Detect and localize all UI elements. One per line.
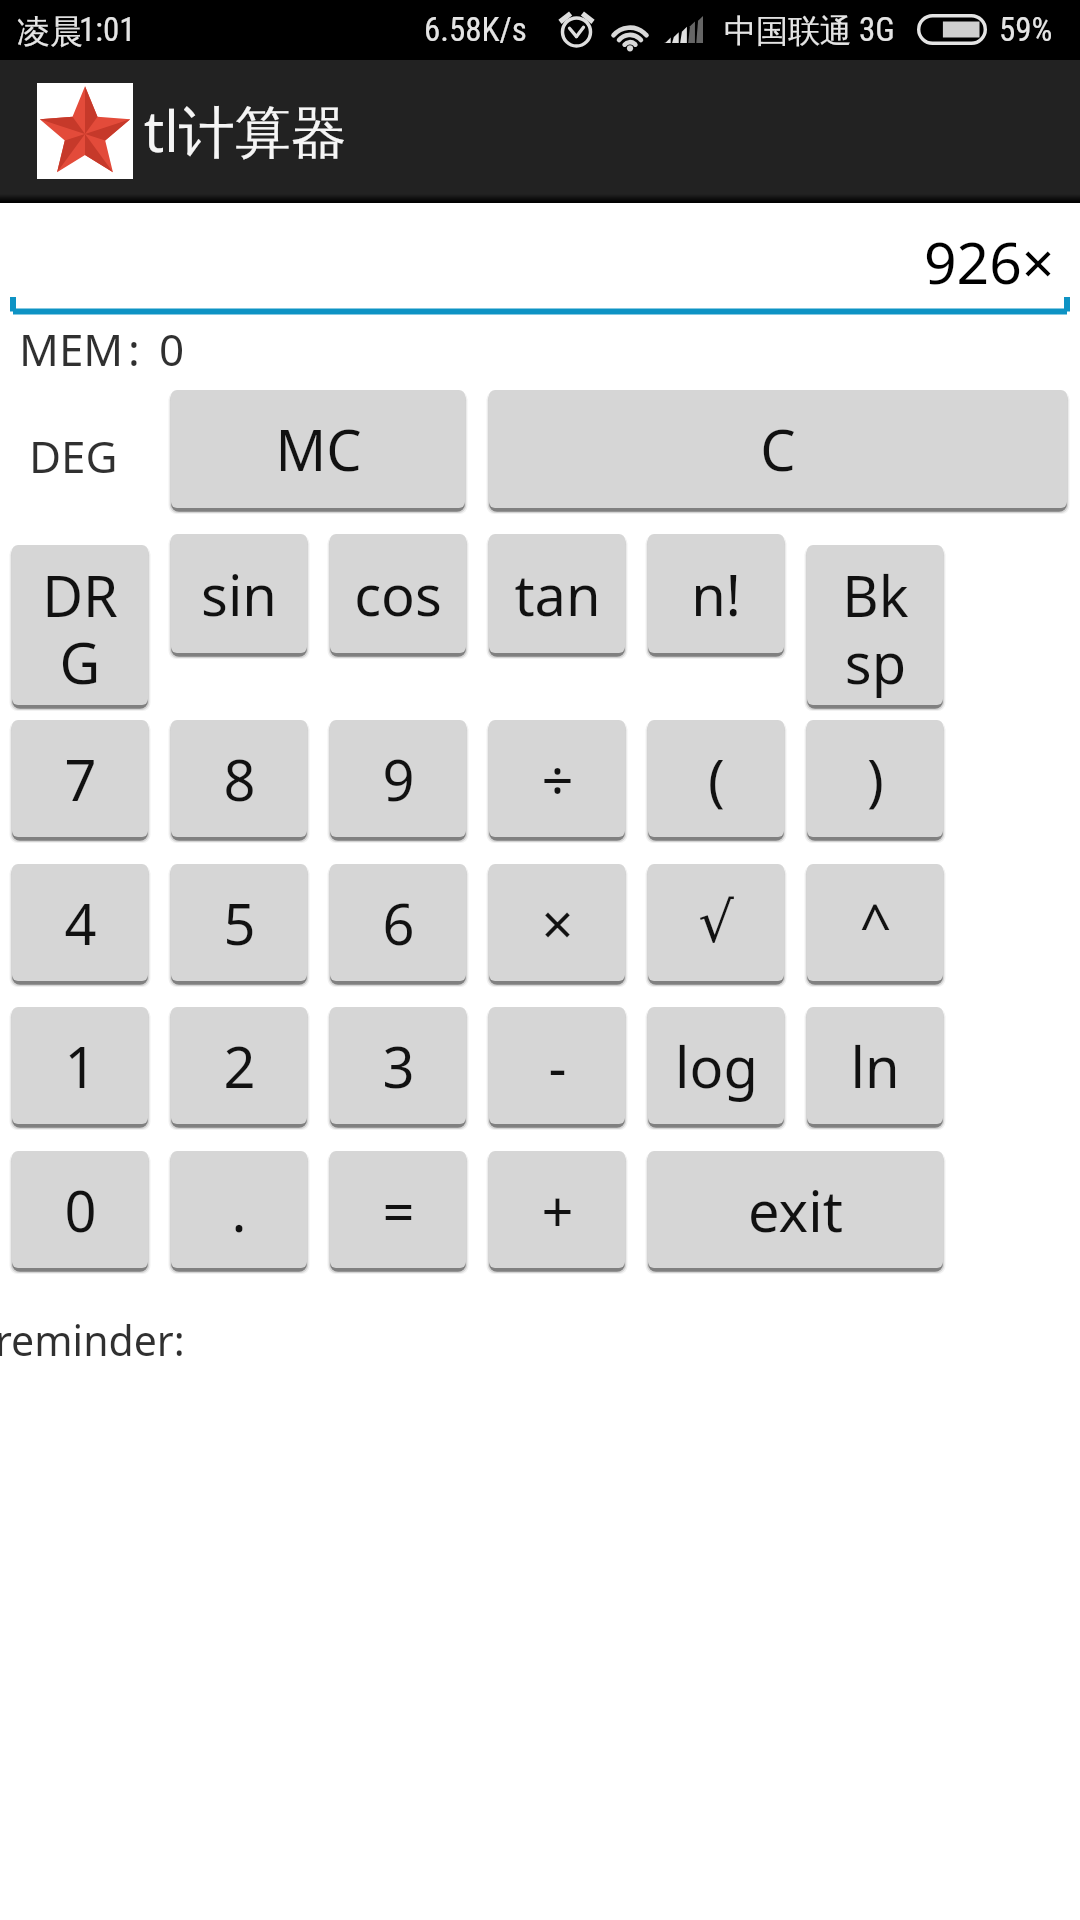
other: Battery <box>917 14 987 45</box>
staticText: 59% <box>999 10 1053 49</box>
staticText: 5 <box>223 885 256 961</box>
staticText: 4 <box>64 885 97 961</box>
staticText: reminder: <box>0 1312 185 1368</box>
staticText: 6.58K/s <box>424 10 527 49</box>
staticText: = <box>382 1172 415 1248</box>
staticText: 1 <box>64 1028 97 1104</box>
button[interactable]: . <box>171 1151 307 1268</box>
staticText: ) <box>867 741 884 817</box>
staticText: DEG <box>29 426 118 486</box>
button[interactable]: 0 <box>12 1151 148 1268</box>
staticText: 9 <box>382 741 415 817</box>
button[interactable]: - <box>489 1007 625 1124</box>
button[interactable]: 1 <box>12 1007 148 1124</box>
button[interactable]: 6 <box>330 864 466 981</box>
staticText: Bk sp <box>842 557 909 700</box>
staticText: tan <box>514 556 601 632</box>
staticText: exit <box>748 1172 843 1248</box>
button[interactable]: ln <box>807 1007 943 1124</box>
staticText: C <box>760 411 796 487</box>
button[interactable]: ( <box>648 720 784 837</box>
staticText: 中国联通 <box>724 11 852 51</box>
button[interactable]: + <box>489 1151 625 1268</box>
button[interactable]: Bk sp <box>807 545 943 705</box>
button[interactable]: MC <box>171 390 465 508</box>
staticText: 3 <box>382 1028 415 1104</box>
button[interactable]: 2 <box>171 1007 307 1124</box>
staticText: 0 <box>159 319 185 379</box>
staticText: 0 <box>64 1172 97 1248</box>
staticText: . <box>231 1172 247 1248</box>
staticText: tl计算器 <box>144 92 347 168</box>
other: Signal <box>664 16 703 43</box>
button[interactable]: exit <box>648 1151 943 1268</box>
staticText: - <box>548 1028 567 1104</box>
button[interactable]: 5 <box>171 864 307 981</box>
staticText: 926× <box>924 223 1055 301</box>
button[interactable]: C <box>489 390 1067 508</box>
button[interactable]: n! <box>648 534 784 653</box>
staticText: 3G <box>859 10 895 49</box>
staticText: ÷ <box>541 741 574 817</box>
button[interactable]: √ <box>648 864 784 981</box>
button[interactable]: ÷ <box>489 720 625 837</box>
button[interactable]: tan <box>489 534 625 653</box>
staticText: cos <box>354 556 442 632</box>
button[interactable]: cos <box>330 534 466 653</box>
staticText: n! <box>691 556 741 632</box>
staticText: + <box>541 1172 574 1248</box>
staticText: ( <box>708 741 725 817</box>
staticText: 1:01 <box>79 10 136 49</box>
button[interactable]: DR G <box>12 545 148 705</box>
button[interactable]: 7 <box>12 720 148 837</box>
other: Wi-Fi <box>608 14 652 58</box>
staticText: 2 <box>223 1028 256 1104</box>
staticText: DR G <box>42 557 118 700</box>
staticText: : <box>128 319 140 379</box>
button[interactable]: log <box>648 1007 784 1124</box>
staticText: 6 <box>382 885 415 961</box>
staticText: × <box>541 885 574 961</box>
staticText: ln <box>850 1028 900 1104</box>
staticText: MEM <box>19 319 124 379</box>
staticText: MC <box>275 411 362 487</box>
staticText: 7 <box>64 741 97 817</box>
button[interactable]: 9 <box>330 720 466 837</box>
button[interactable]: sin <box>171 534 307 653</box>
button[interactable]: ) <box>807 720 943 837</box>
button[interactable]: 3 <box>330 1007 466 1124</box>
other: Alarm <box>560 13 593 46</box>
staticText: ^ <box>859 885 892 961</box>
staticText: log <box>675 1028 758 1104</box>
button[interactable]: × <box>489 864 625 981</box>
button[interactable]: = <box>330 1151 466 1268</box>
staticText: sin <box>201 556 277 632</box>
staticText: 8 <box>223 741 256 817</box>
staticText: 凌晨 <box>17 11 83 53</box>
button[interactable]: ^ <box>807 864 943 981</box>
button[interactable]: 8 <box>171 720 307 837</box>
staticText: √ <box>698 890 734 955</box>
button[interactable]: 4 <box>12 864 148 981</box>
